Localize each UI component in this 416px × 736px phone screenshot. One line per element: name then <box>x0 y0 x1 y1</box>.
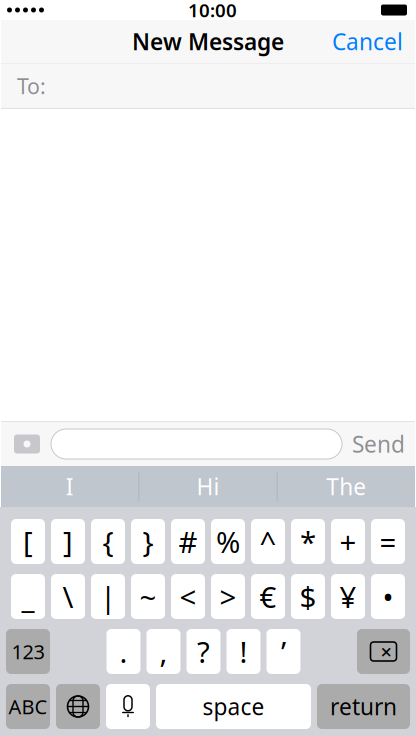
button[interactable]: # <box>171 519 205 564</box>
button[interactable]: { <box>91 519 125 564</box>
button[interactable]: [ <box>11 519 45 564</box>
staticText: The <box>326 471 366 501</box>
staticText: ’ <box>281 632 286 671</box>
button[interactable] <box>51 429 342 459</box>
staticText: | <box>100 577 116 616</box>
button[interactable]: Cancel <box>320 18 415 64</box>
staticText: ! <box>239 632 247 671</box>
button[interactable]: ^ <box>251 519 285 564</box>
button[interactable]: % <box>211 519 245 564</box>
button[interactable]: > <box>211 574 245 619</box>
button[interactable]: = <box>371 519 405 564</box>
staticText: I <box>66 471 74 501</box>
button[interactable]: 123 <box>6 629 50 674</box>
button[interactable]: Camera <box>7 427 47 461</box>
staticText: + <box>339 522 356 561</box>
staticText: \ <box>62 577 73 616</box>
button[interactable]: $ <box>291 574 325 619</box>
staticText: ~ <box>139 577 156 616</box>
button[interactable]: * <box>291 519 325 564</box>
staticText: < <box>179 577 196 616</box>
staticText: , <box>159 632 167 671</box>
button[interactable]: Delete <box>357 629 410 674</box>
button[interactable]: . <box>106 629 140 674</box>
staticText: # <box>178 522 197 561</box>
button[interactable]: € <box>251 574 285 619</box>
staticText: ABC <box>8 693 47 720</box>
staticText: Cancel <box>332 26 403 56</box>
button[interactable]: _ <box>11 574 45 619</box>
button[interactable]: Send <box>342 429 415 459</box>
staticText: space <box>202 691 264 721</box>
staticText: 10:00 <box>188 0 237 22</box>
staticText: ^ <box>259 522 276 561</box>
button[interactable]: , <box>146 629 180 674</box>
button[interactable]: ! <box>226 629 260 674</box>
staticText: . <box>119 632 127 671</box>
staticText: } <box>142 522 153 561</box>
staticText: ] <box>63 522 73 561</box>
staticText: = <box>379 522 396 561</box>
button[interactable]: | <box>91 574 125 619</box>
button[interactable]: ¥ <box>331 574 365 619</box>
staticText: * <box>300 522 316 561</box>
button[interactable]: + <box>331 519 365 564</box>
staticText: Hi <box>196 471 219 501</box>
button[interactable]: Hi <box>139 466 277 507</box>
button[interactable]: } <box>131 519 165 564</box>
staticText: $ <box>299 577 316 616</box>
staticText: { <box>102 522 113 561</box>
staticText: € <box>259 577 276 616</box>
button[interactable]: ABC <box>6 684 50 729</box>
button[interactable]: • <box>371 574 405 619</box>
button[interactable]: Dictate <box>106 684 150 729</box>
staticText: To: <box>17 72 46 100</box>
button[interactable]: space <box>156 684 311 729</box>
staticText: [ <box>23 522 33 561</box>
button[interactable]: ? <box>186 629 220 674</box>
staticText: return <box>330 691 397 721</box>
staticText: • <box>382 577 393 616</box>
button[interactable]: return <box>317 684 410 729</box>
staticText: 123 <box>11 638 44 665</box>
staticText: × <box>380 638 391 665</box>
button[interactable]: To: <box>1 63 415 108</box>
button[interactable]: I <box>1 466 138 507</box>
button[interactable]: The <box>278 466 415 507</box>
button[interactable]: < <box>171 574 205 619</box>
staticText: _ <box>21 577 34 616</box>
staticText: ¥ <box>339 577 356 616</box>
staticText: New Message <box>132 26 284 56</box>
button[interactable]: ] <box>51 519 85 564</box>
staticText: Send <box>352 429 405 459</box>
staticText: ? <box>197 632 210 671</box>
button[interactable]: \ <box>51 574 85 619</box>
staticText: > <box>219 577 236 616</box>
button[interactable]: ~ <box>131 574 165 619</box>
staticText: % <box>216 522 240 561</box>
button[interactable]: Next keyboard <box>56 684 100 729</box>
button[interactable]: ’ <box>266 629 300 674</box>
